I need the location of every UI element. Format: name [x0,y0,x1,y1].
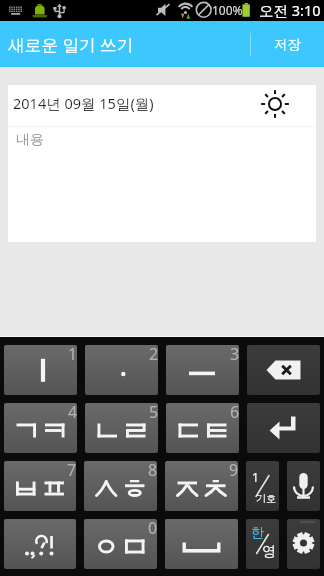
button[interactable]: .,?! [4,519,76,569]
button[interactable]: ㅡ [166,345,239,395]
button[interactable]: Voice input [287,461,320,511]
button[interactable]: ㅅㅎ [84,461,157,511]
button[interactable]: 새로운 일기 쓰기 [0,21,250,67]
staticText: 저장 [274,36,301,53]
staticText: 0 [148,519,157,539]
staticText: 6 [230,403,239,423]
staticText: 오전 3:10 [259,0,321,20]
button[interactable]: Settings [287,519,320,569]
button[interactable]: Symbols [246,461,279,511]
staticText: 새로운 일기 쓰기 [8,33,134,56]
staticText: 1 [252,469,259,485]
staticText: 4 [68,403,77,423]
button[interactable]: ㅈㅊ [165,461,238,511]
staticText: 8 [148,461,157,481]
staticText: 1 [68,345,77,365]
staticText: 기호 [256,492,276,505]
staticText: 100% [212,2,243,18]
staticText: 2 [149,345,158,365]
button[interactable]: Language [246,519,279,569]
button[interactable]: 저장 [251,21,324,67]
button[interactable]: ㅇㅁ [84,519,157,569]
button[interactable]: Backspace [247,345,320,395]
button[interactable]: Space [165,519,238,569]
staticText: 3 [230,345,239,365]
button[interactable]: ㄱㅋ [4,403,77,453]
button[interactable]: ㅣ [4,345,77,395]
staticText: 한 [251,524,264,540]
button[interactable]: ㅂㅍ [4,461,76,511]
staticText: 5 [149,403,158,423]
button[interactable]: Enter [247,403,320,453]
button[interactable]: Weather [254,83,295,124]
button[interactable]: ㄷㅌ [166,403,239,453]
staticText: 7 [67,461,76,481]
staticText: 영 [262,543,276,561]
staticText: 내용 [16,131,44,149]
staticText: 2014년 09월 15일(월) [13,93,154,113]
staticText: 9 [229,461,238,481]
button[interactable]: ㄴㄹ [85,403,158,453]
button[interactable]: ㆍ [85,345,158,395]
